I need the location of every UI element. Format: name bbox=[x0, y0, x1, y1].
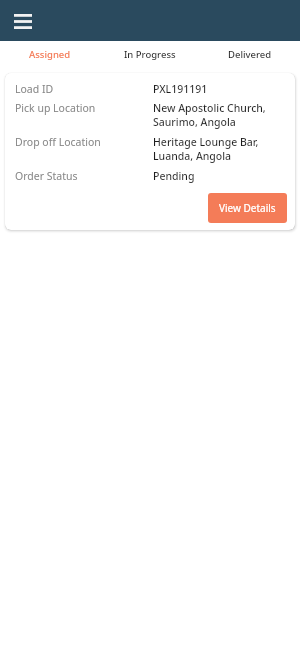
button[interactable]: Load ID bbox=[5, 73, 295, 230]
button[interactable]: In Progress bbox=[100, 41, 200, 68]
staticText: View Details bbox=[219, 201, 276, 215]
button[interactable]: Open navigation menu bbox=[10, 8, 36, 34]
staticText: In Progress bbox=[124, 48, 176, 61]
button[interactable]: View Details bbox=[208, 193, 287, 223]
staticText: Delivered bbox=[228, 48, 272, 61]
staticText: Drop off Location bbox=[15, 135, 101, 149]
staticText: PXL191191 bbox=[153, 82, 208, 96]
staticText: Pending bbox=[153, 169, 195, 183]
button[interactable]: Assigned bbox=[0, 41, 100, 68]
staticText: Order Status bbox=[15, 169, 78, 183]
button[interactable]: Delivered bbox=[200, 41, 300, 68]
staticText: New Apostolic Church, Saurimo, Angola bbox=[153, 101, 266, 129]
staticText: Pick up Location bbox=[15, 101, 96, 115]
staticText: Assigned bbox=[29, 48, 71, 61]
staticText: Heritage Lounge Bar, Luanda, Angola bbox=[153, 135, 259, 163]
staticText: Load ID bbox=[15, 82, 54, 96]
